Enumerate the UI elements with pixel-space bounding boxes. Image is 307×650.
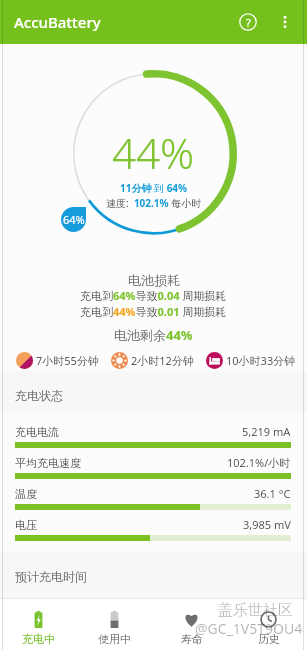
staticText: 充电状态 (15, 388, 63, 403)
staticText: 36.1 °C (254, 486, 291, 501)
staticText: 3,985 mV (243, 517, 291, 532)
staticText: 64% (63, 212, 85, 227)
button[interactable]: 使用中 (76, 599, 153, 650)
staticText: 2小时12分钟 (131, 353, 194, 368)
staticText: 44% (112, 124, 195, 181)
staticText: 温度 (15, 487, 37, 501)
staticText: 电池剩余44% (114, 326, 193, 344)
staticText: @GC_1V5T9OU4 (195, 619, 303, 638)
staticText: 10小时33分钟 (226, 353, 296, 368)
button[interactable]: 历史 (230, 599, 307, 650)
staticText: 寿命 (181, 632, 203, 646)
staticText: 盖乐世社区 (218, 601, 293, 620)
staticText: 102.1%/小时 (227, 455, 291, 470)
staticText: 充电电流 (15, 425, 59, 439)
button[interactable]: Help (228, 2, 268, 42)
button[interactable]: More options (268, 5, 302, 39)
button[interactable]: 寿命 (153, 599, 230, 650)
staticText: 使用中 (98, 632, 131, 646)
staticText: 平均充电速度 (15, 456, 81, 470)
staticText: 电池损耗 (128, 272, 180, 288)
staticText: AccuBattery (14, 12, 101, 32)
staticText: 预计充电时间 (15, 569, 87, 584)
staticText: 历史 (258, 632, 280, 646)
button[interactable]: 充电中 (0, 599, 76, 650)
staticText: 5,219 mA (242, 424, 291, 439)
staticText: 充电到64%导致0.04 周期损耗 (80, 288, 227, 303)
staticText: 电压 (15, 518, 37, 532)
staticText: ? (246, 15, 251, 30)
staticText: 速度: 102.1% 每小时 (106, 196, 202, 210)
staticText: 充电中 (22, 632, 55, 646)
staticText: 11分钟 到 64% (120, 181, 188, 195)
staticText: 充电到44%导致0.01 周期损耗 (80, 304, 227, 319)
staticText: 7小时55分钟 (36, 353, 99, 368)
